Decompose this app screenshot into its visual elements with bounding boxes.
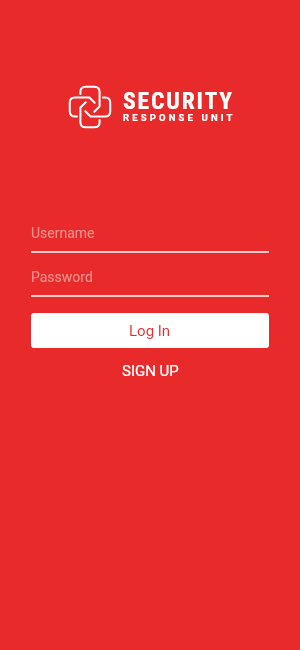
button[interactable]: Log In [31,313,269,348]
other: Security Response Unit logo [68,85,112,129]
button[interactable]: Username [31,218,269,253]
staticText: RESPONSE UNIT [123,112,236,123]
staticText: Username [31,225,95,241]
button[interactable]: Password [31,262,269,297]
staticText: Log In [129,322,171,340]
staticText: Password [31,269,93,285]
button[interactable]: SIGN UP [31,356,269,386]
staticText: SIGN UP [122,362,179,380]
staticText: SECURITY [123,87,235,115]
